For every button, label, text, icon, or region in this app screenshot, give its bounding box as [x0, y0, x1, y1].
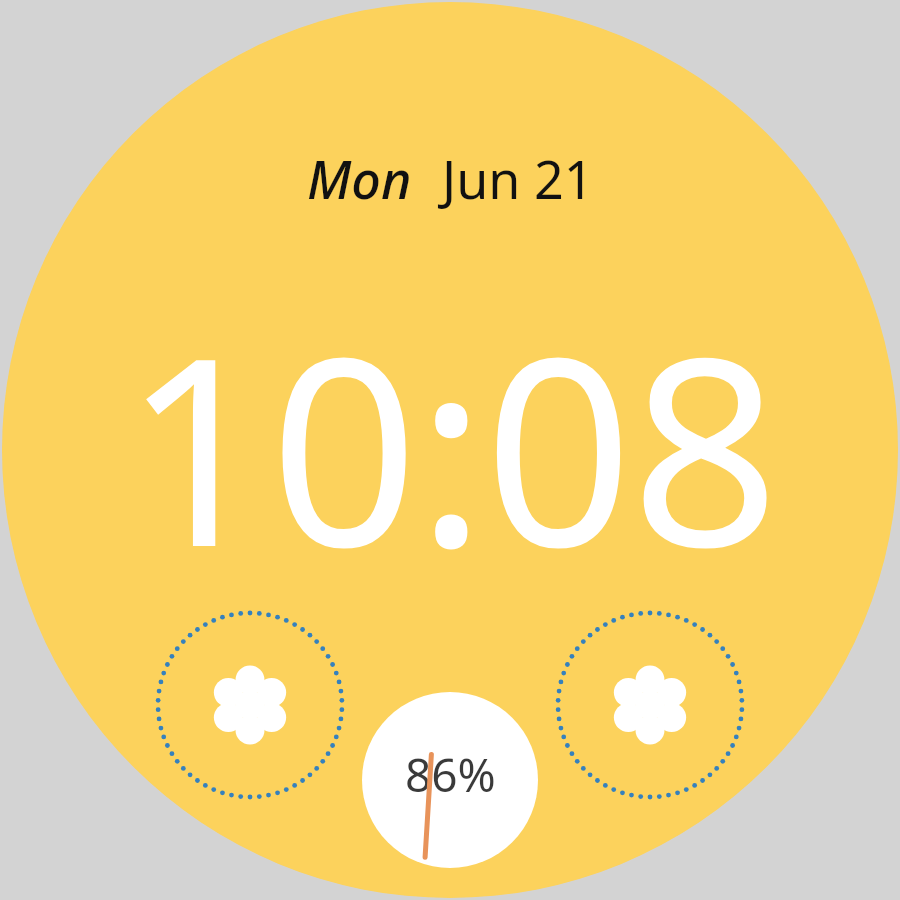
button[interactable]: Complication — [555, 610, 745, 800]
button[interactable]: Battery 86 percent — [362, 692, 538, 868]
button[interactable]: Mon — [307, 143, 594, 214]
staticText: 86% — [405, 743, 496, 806]
staticText: Jun 21 — [442, 143, 594, 214]
staticText: Mon — [307, 143, 412, 214]
button[interactable]: 10:08 — [123, 268, 778, 622]
button[interactable]: Complication — [155, 610, 345, 800]
